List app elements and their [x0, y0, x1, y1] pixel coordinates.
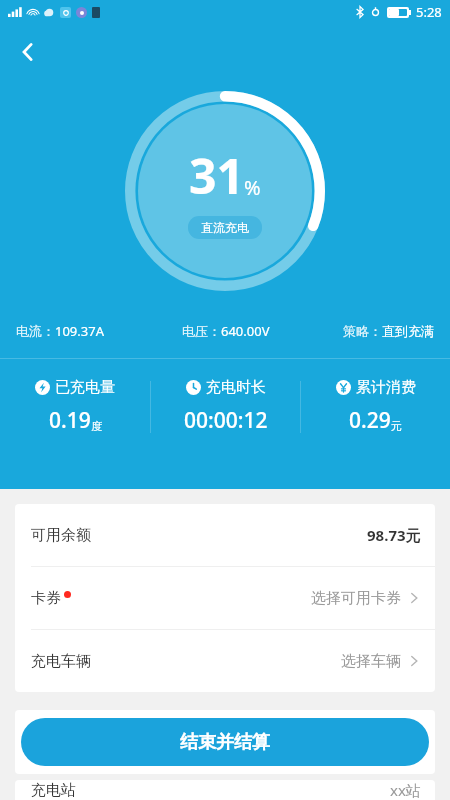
staticText: 充电时长 — [206, 378, 266, 397]
button[interactable]: Back — [6, 30, 50, 74]
staticText: 0.19 — [49, 406, 91, 435]
button[interactable]: 结束并结算 — [21, 718, 429, 766]
button[interactable]: 可用余额 — [15, 504, 435, 566]
staticText: 98.73元 — [367, 525, 421, 545]
staticText: 640.00V — [221, 322, 270, 340]
staticText: 电压： — [182, 323, 221, 339]
staticText: 00:00:12 — [184, 406, 268, 435]
staticText: 直到充满 — [382, 323, 434, 339]
button[interactable]: 累计消费 — [301, 378, 450, 435]
staticText: 已充电量 — [55, 378, 115, 397]
staticText: 充电站 — [31, 781, 76, 800]
staticText: 选择车辆 — [341, 652, 401, 671]
staticText: 0.29 — [349, 406, 391, 435]
staticText: 充电车辆 — [31, 652, 91, 671]
button[interactable]: 充电站 — [15, 780, 435, 800]
button[interactable]: 已充电量 — [0, 378, 150, 435]
staticText: 电流： — [16, 323, 55, 339]
staticText: 度 — [91, 419, 102, 433]
staticText: 结束并结算 — [180, 731, 270, 754]
staticText: xx站 — [390, 780, 421, 800]
staticText: 元 — [391, 419, 402, 433]
staticText: 选择可用卡券 — [311, 589, 401, 608]
staticText: 策略： — [343, 323, 382, 339]
staticText: 累计消费 — [356, 378, 416, 397]
staticText: 31 — [189, 143, 244, 208]
staticText: % — [244, 174, 261, 201]
button[interactable]: 充电车辆 — [15, 630, 435, 692]
staticText: 109.37A — [55, 322, 104, 340]
staticText: 可用余额 — [31, 526, 91, 545]
button[interactable]: 卡券 — [15, 567, 435, 629]
staticText: 直流充电 — [201, 220, 249, 235]
button[interactable]: 充电时长 — [151, 378, 300, 435]
staticText: 5:28 — [416, 3, 442, 21]
staticText: 卡券 — [31, 589, 61, 608]
